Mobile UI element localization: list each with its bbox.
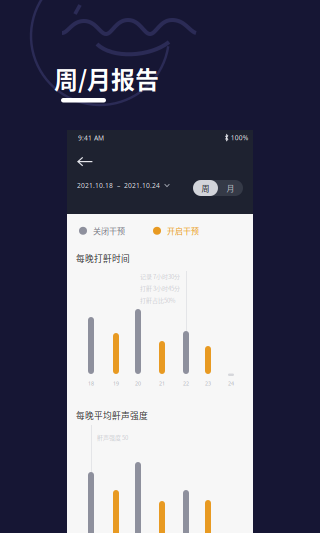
staticText: 记录 7小时30分 [140,272,180,281]
button[interactable]: Back [71,151,99,172]
staticText: 23 [205,380,211,387]
staticText: 21 [159,380,165,387]
staticText: 打鼾占比50% [140,296,176,304]
staticText: 关闭干预 [93,225,125,237]
staticText: 19 [113,380,119,387]
staticText: 18 [88,380,94,387]
button[interactable]: 月 [218,180,243,196]
staticText: 2021.10.18 – 2021.10.24 [77,181,160,190]
staticText: 周/月报告 [54,61,159,96]
staticText: 开启干预 [167,225,199,237]
staticText: 打鼾 3小时45分 [140,284,180,293]
staticText: 每晚打鼾时间 [76,252,130,264]
button[interactable]: 周 [193,180,218,196]
staticText: 22 [183,380,189,387]
button[interactable]: 2021.10.18 – 2021.10.24 [77,177,170,194]
staticText: 100% [231,133,249,142]
staticText: 9:41 AM [78,134,104,142]
staticText: 每晚平均鼾声强度 [76,409,148,421]
staticText: 24 [228,380,234,387]
staticText: 周 [201,182,209,194]
staticText: 20 [135,380,141,387]
staticText: 月 [226,182,234,194]
staticText: 鼾声强度 50 [97,433,128,442]
